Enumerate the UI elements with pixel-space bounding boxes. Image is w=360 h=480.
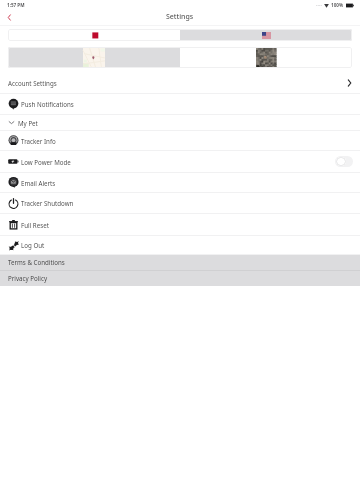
button[interactable]: Japanese xyxy=(8,29,180,41)
staticText: Email Alerts xyxy=(21,179,56,187)
staticText: Terms & Conditions xyxy=(8,258,65,266)
button[interactable]: Low Power Mode toggle xyxy=(335,156,353,167)
button[interactable]: Terms & Conditions xyxy=(0,255,360,270)
staticText: Tracker Info xyxy=(21,137,56,145)
button[interactable]: Push Notifications xyxy=(0,94,360,114)
button[interactable]: Low Power Mode xyxy=(0,151,360,172)
button[interactable]: Full Reset xyxy=(0,214,360,235)
button[interactable]: Email Alerts xyxy=(0,173,360,192)
staticText: 1:57 PM xyxy=(7,2,25,8)
staticText: Tracker Shutdown xyxy=(21,199,74,207)
button[interactable]: Back xyxy=(0,9,18,25)
staticText: Low Power Mode xyxy=(21,158,71,166)
button[interactable]: Map view xyxy=(8,47,180,68)
button[interactable]: Log Out xyxy=(0,236,360,254)
button[interactable]: English xyxy=(180,29,352,41)
staticText: Privacy Policy xyxy=(8,274,48,282)
staticText: Full Reset xyxy=(21,221,49,229)
staticText: Push Notifications xyxy=(21,100,74,108)
staticText: 100% xyxy=(331,2,344,8)
staticText: Account Settings xyxy=(8,79,57,87)
staticText: My Pet xyxy=(18,119,38,127)
button[interactable]: Tracker Shutdown xyxy=(0,193,360,213)
staticText: Log Out xyxy=(21,241,45,249)
button[interactable]: Tracker Info xyxy=(0,131,360,150)
button[interactable]: Account Settings xyxy=(0,72,360,93)
staticText: Settings xyxy=(166,12,194,22)
button[interactable]: Satellite view xyxy=(180,47,352,68)
button[interactable]: My Pet xyxy=(0,115,360,130)
button[interactable]: Privacy Policy xyxy=(0,271,360,286)
